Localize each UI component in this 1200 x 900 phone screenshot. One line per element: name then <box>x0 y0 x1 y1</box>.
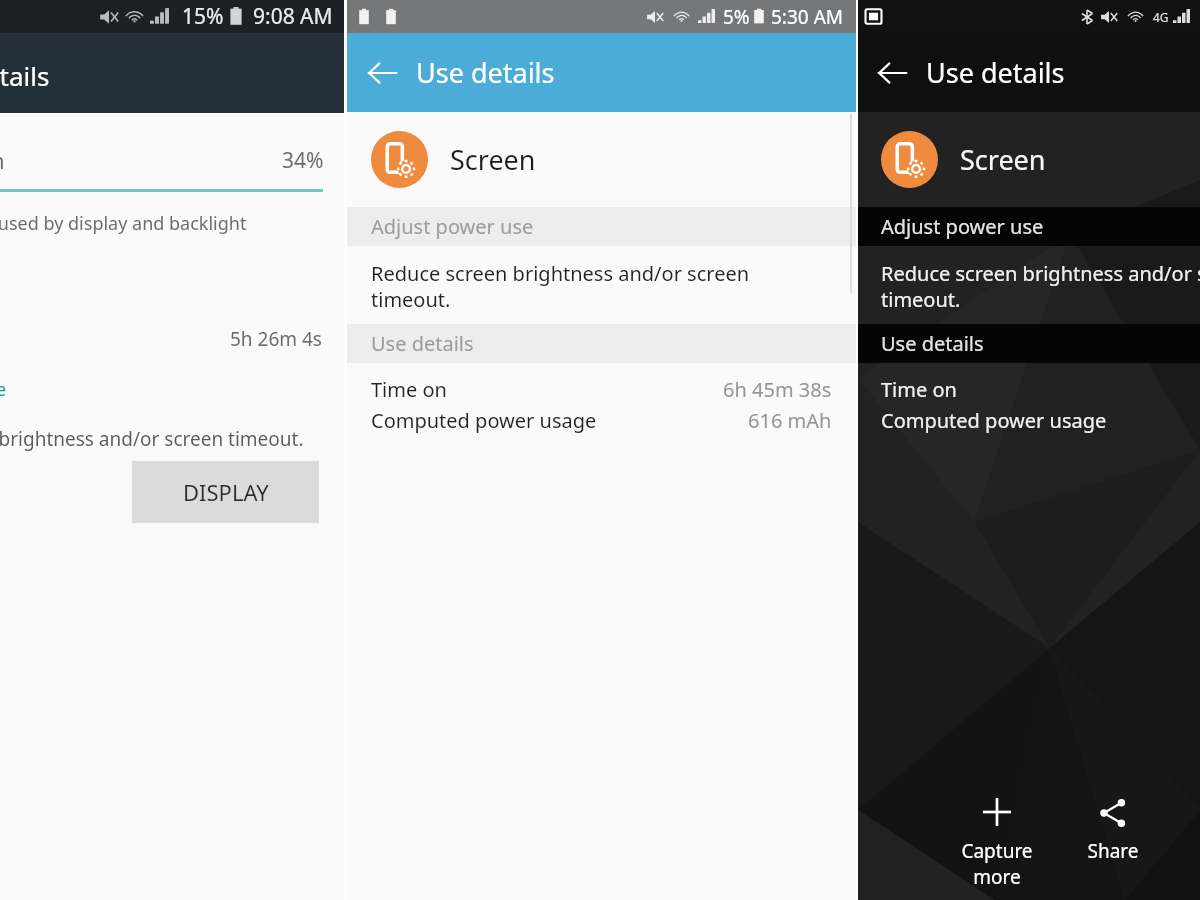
button[interactable]: DISPLAY <box>132 461 319 523</box>
staticText: Screen <box>0 147 5 176</box>
staticText: 34% <box>282 146 324 175</box>
staticText: Computed power usage <box>371 407 597 434</box>
staticText: Use details <box>416 54 555 91</box>
staticText: Reduce screen brightness and/or screen t… <box>0 426 304 452</box>
staticText: DISPLAY <box>183 477 269 507</box>
staticText: Use details <box>0 58 50 93</box>
staticText: Computed power usage <box>881 407 1107 434</box>
staticText: 5h 26m 4s <box>230 326 322 352</box>
staticText: Reduce screen brightness and/or screen t… <box>371 260 766 313</box>
staticText: Use details <box>881 330 984 357</box>
staticText: Capture more <box>945 838 1049 890</box>
staticText: 15% <box>182 2 224 31</box>
staticText: 5% <box>723 4 750 30</box>
button[interactable]: Capture more <box>945 792 1049 894</box>
button[interactable]: Computed power usage <box>858 407 1200 434</box>
staticText: Use details <box>926 54 1065 91</box>
button[interactable]: Time on <box>858 376 1200 403</box>
button[interactable]: Adjust power use <box>0 0 147 25</box>
button[interactable]: Screen <box>347 112 856 207</box>
staticText: Power used by display and backlight <box>0 211 247 236</box>
staticText: 616 mAh <box>748 407 832 434</box>
staticText: Screen <box>960 141 1046 178</box>
button[interactable]: Computed power usage <box>347 407 856 434</box>
staticText: Reduce screen brightness and/or screen t… <box>881 260 1200 313</box>
staticText: Adjust power use <box>881 213 1044 240</box>
button[interactable]: Screen <box>858 112 1200 207</box>
button[interactable]: Reduce screen brightness and/or screen t… <box>858 246 1200 324</box>
staticText: 9:08 AM <box>253 2 333 31</box>
staticText: 4G <box>1153 9 1169 25</box>
button[interactable]: Back <box>360 51 404 95</box>
staticText: 5:30 AM <box>771 4 844 30</box>
staticText: 6h 45m 38s <box>723 376 832 403</box>
staticText: Share <box>1061 838 1165 864</box>
staticText: Screen <box>450 141 536 178</box>
button[interactable]: Share <box>1061 792 1165 868</box>
staticText: Use details <box>371 330 474 357</box>
button[interactable]: Time on <box>347 376 856 403</box>
button[interactable]: Back <box>870 51 914 95</box>
button[interactable]: Reduce screen brightness and/or screen t… <box>347 246 856 324</box>
staticText: Time on <box>371 376 447 403</box>
staticText: Time on <box>881 376 957 403</box>
staticText: Adjust power use <box>371 213 534 240</box>
